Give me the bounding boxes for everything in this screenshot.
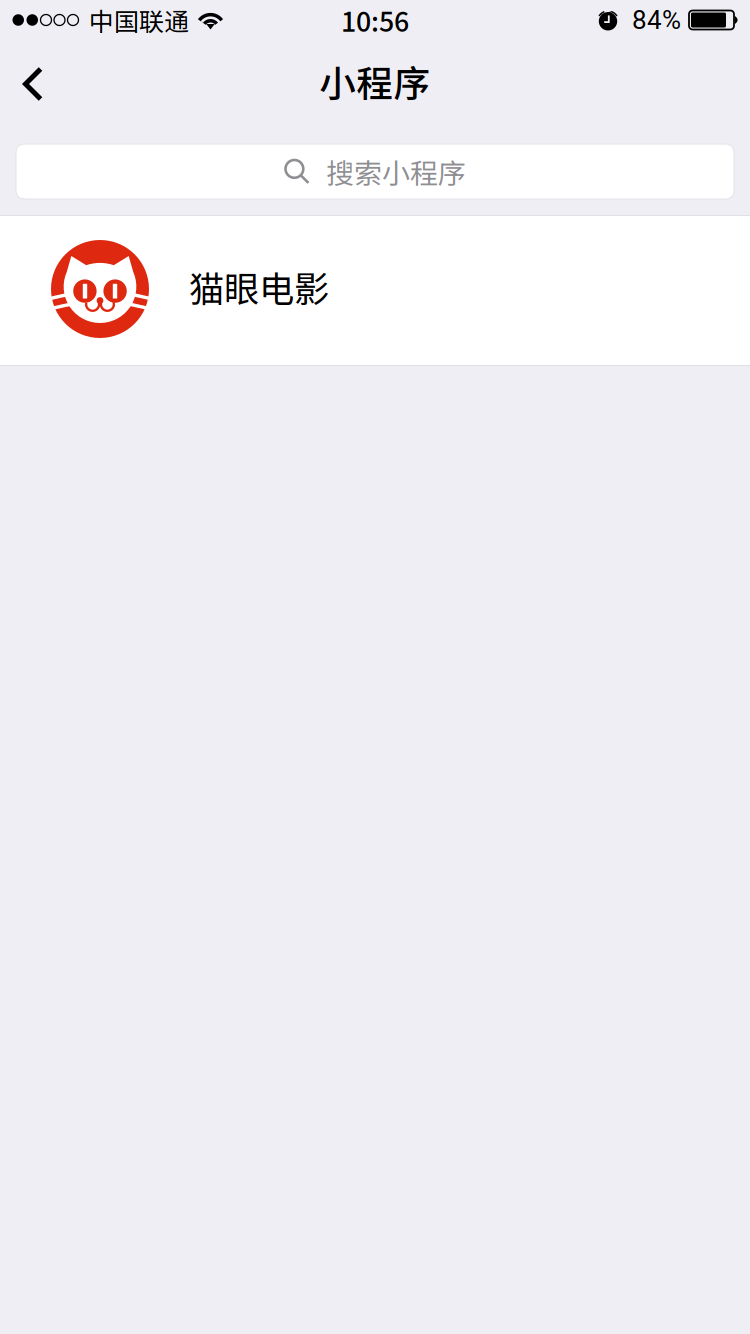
staticText: 猫眼电影 <box>189 261 329 312</box>
staticText: 10:56 <box>341 1 409 39</box>
button[interactable]: 搜索小程序 <box>16 144 734 199</box>
button[interactable]: Back <box>0 40 69 128</box>
staticText: 84% <box>632 5 681 35</box>
staticText: 中国联通 <box>89 2 189 38</box>
staticText: 搜索小程序 <box>326 151 466 192</box>
button[interactable]: 猫眼电影 <box>0 216 750 365</box>
staticText: 小程序 <box>319 55 430 107</box>
